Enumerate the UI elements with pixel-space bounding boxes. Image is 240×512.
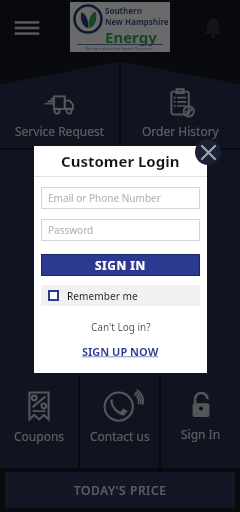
- button[interactable]: Order History: [121, 62, 240, 148]
- staticText: Service Request: [15, 123, 105, 139]
- button[interactable]: Menu: [10, 11, 44, 45]
- button[interactable]: SIGN UP NOW: [82, 344, 159, 359]
- staticText: TODAY'S PRICE: [74, 482, 167, 498]
- staticText: Energy: [105, 27, 157, 47]
- button[interactable]: Sign In: [161, 376, 240, 468]
- button[interactable]: Email or Phone Number: [41, 187, 200, 209]
- button[interactable]: Close: [195, 139, 221, 165]
- button[interactable]: Contact us: [80, 376, 159, 468]
- button[interactable]: Password: [41, 219, 200, 241]
- staticText: Order History: [142, 123, 219, 139]
- staticText: Password: [48, 223, 94, 237]
- staticText: Southern: [105, 5, 142, 16]
- staticText: New Hampshire: [105, 16, 169, 27]
- staticText: SIGN IN: [95, 257, 146, 273]
- button[interactable]: Service Request: [0, 62, 119, 148]
- staticText: Remember me: [67, 289, 138, 303]
- button[interactable]: Logo: [70, 2, 170, 52]
- button[interactable]: SIGN IN: [41, 254, 200, 276]
- staticText: Coupons: [14, 428, 65, 444]
- button[interactable]: Remember me: [41, 285, 200, 306]
- button[interactable]: Notifications: [196, 11, 230, 45]
- staticText: Contact us: [90, 428, 150, 444]
- staticText: Customer Login: [61, 151, 180, 171]
- button[interactable]: Coupons: [0, 376, 78, 468]
- button[interactable]: Can't Log in?: [91, 320, 151, 334]
- button[interactable]: TODAY'S PRICE: [5, 472, 235, 508]
- staticText: Sign In: [181, 426, 221, 442]
- staticText: We care about the future. Go green.: [86, 46, 154, 51]
- staticText: Email or Phone Number: [48, 191, 161, 205]
